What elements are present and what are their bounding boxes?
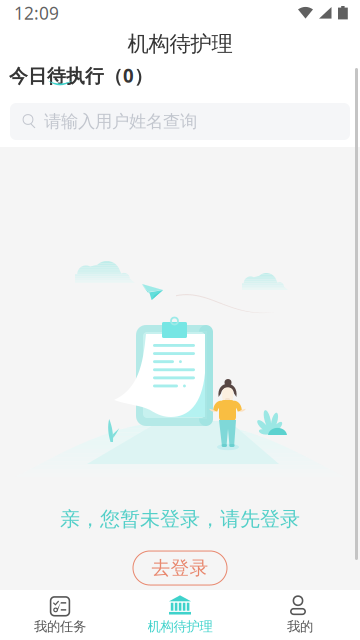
staticText: 请输入用户姓名查询 — [44, 111, 197, 132]
staticText: 亲，您暂未登录，请先登录 — [60, 507, 300, 531]
button[interactable]: 机构待护理 — [120, 590, 240, 640]
staticText: 我的 — [287, 618, 313, 635]
staticText: 今日待执行（0） — [9, 63, 153, 88]
staticText: 机构待护理 — [147, 618, 212, 635]
staticText: 12:09 — [14, 1, 59, 24]
button[interactable]: 去登录 — [133, 551, 227, 585]
button[interactable]: 我的 — [240, 590, 360, 640]
staticText: 去登录 — [151, 556, 208, 579]
staticText: 机构待护理 — [127, 31, 232, 57]
staticText: 我的任务 — [34, 618, 86, 635]
button[interactable]: 我的任务 — [0, 590, 120, 640]
